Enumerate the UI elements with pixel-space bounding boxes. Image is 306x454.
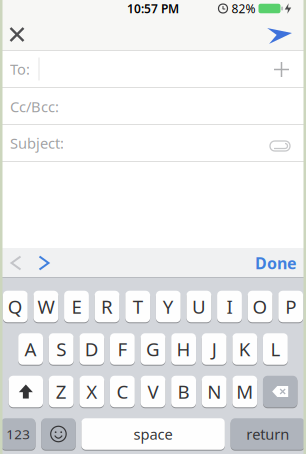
staticText: J <box>212 337 217 361</box>
button[interactable]: Q <box>3 291 28 322</box>
staticText: Z <box>56 379 67 404</box>
button[interactable]: return <box>231 418 305 450</box>
staticText: 123 <box>6 425 30 443</box>
staticText: Q <box>8 294 23 319</box>
button[interactable]: C <box>110 376 135 407</box>
button[interactable]: O <box>248 291 273 322</box>
button[interactable]: M <box>232 376 257 407</box>
button[interactable]: V <box>141 376 165 407</box>
button[interactable]: Add recipient <box>267 55 295 83</box>
button[interactable]: 123 <box>1 418 35 450</box>
button[interactable]: T <box>125 291 150 322</box>
button[interactable]: Done <box>251 250 301 276</box>
button[interactable]: Send <box>264 19 296 49</box>
staticText: D <box>85 337 99 361</box>
button[interactable]: Next field <box>32 250 56 276</box>
staticText: O <box>253 294 268 319</box>
staticText: U <box>192 294 206 319</box>
staticText: Cc/Bcc: <box>10 97 59 116</box>
button[interactable]: X <box>79 376 104 407</box>
staticText: H <box>177 337 191 361</box>
button[interactable]: Z <box>49 376 74 407</box>
staticText: M <box>236 379 253 404</box>
staticText: G <box>146 337 160 361</box>
staticText: A <box>25 337 37 361</box>
button[interactable]: Y <box>156 291 181 322</box>
staticText: E <box>71 294 81 319</box>
staticText: W <box>37 294 54 319</box>
button[interactable]: Shift <box>9 376 43 407</box>
staticText: 10:57 PM <box>127 0 179 16</box>
staticText: X <box>86 379 97 404</box>
button[interactable]: P <box>278 291 303 322</box>
button[interactable]: K <box>232 333 257 365</box>
staticText: S <box>56 337 66 361</box>
staticText: F <box>117 337 127 361</box>
staticText: Done <box>255 252 297 274</box>
button[interactable]: B <box>171 376 196 407</box>
staticText: V <box>147 379 158 404</box>
button[interactable]: I <box>217 291 242 322</box>
staticText: N <box>207 379 221 404</box>
staticText: 82% <box>231 0 255 16</box>
staticText: return <box>246 424 289 444</box>
button[interactable]: W <box>33 291 58 322</box>
button[interactable]: F <box>110 333 135 365</box>
staticText: Subject: <box>10 133 64 153</box>
button[interactable]: J <box>202 333 227 365</box>
button[interactable]: E <box>64 291 89 322</box>
button[interactable]: Emoji <box>41 418 76 450</box>
staticText: C <box>116 379 128 404</box>
staticText: B <box>178 379 190 404</box>
button[interactable]: G <box>141 333 165 365</box>
staticText: I <box>226 294 232 319</box>
button[interactable]: S <box>49 333 74 365</box>
button[interactable]: N <box>202 376 227 407</box>
button[interactable]: D <box>79 333 104 365</box>
staticText: P <box>285 294 296 319</box>
staticText: R <box>101 294 113 319</box>
staticText: Y <box>163 294 174 319</box>
button[interactable]: space <box>81 418 225 450</box>
button[interactable]: Close <box>2 19 32 49</box>
button[interactable]: L <box>263 333 288 365</box>
button[interactable]: H <box>171 333 196 365</box>
button[interactable]: Attach file <box>265 131 295 161</box>
button[interactable]: R <box>95 291 120 322</box>
button[interactable]: Previous field <box>4 250 28 276</box>
staticText: To: <box>10 59 30 79</box>
staticText: K <box>239 337 251 361</box>
staticText: T <box>133 294 143 319</box>
staticText: space <box>134 424 173 444</box>
button[interactable]: Delete <box>263 376 297 407</box>
staticText: L <box>270 337 280 361</box>
button[interactable]: U <box>186 291 211 322</box>
button[interactable]: A <box>18 333 43 365</box>
